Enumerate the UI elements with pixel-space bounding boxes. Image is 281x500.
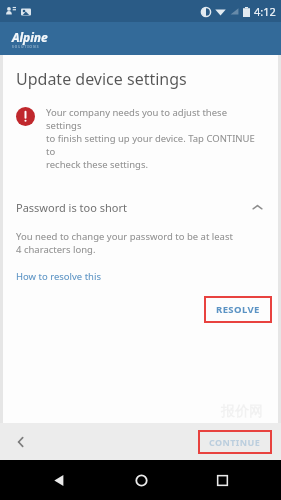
staticText: SOLUTIONS	[12, 45, 40, 49]
button[interactable]: Back	[36, 460, 82, 500]
staticText: Your company needs you to adjust these s…	[46, 106, 262, 171]
button[interactable]: Password is too short	[3, 195, 278, 219]
button[interactable]: Home	[118, 460, 164, 500]
staticText: CONTINUE	[209, 436, 261, 448]
staticText: Alpine	[12, 29, 48, 45]
button[interactable]: Back	[8, 429, 34, 455]
staticText: Password is too short	[16, 200, 247, 215]
staticText: How to resolve this	[16, 270, 101, 283]
staticText: 报价网	[221, 403, 263, 421]
button[interactable]: CONTINUE	[198, 430, 272, 454]
staticText: You need to change your password to be a…	[16, 230, 233, 256]
staticText: 4:12	[254, 4, 276, 19]
staticText: Update device settings	[16, 68, 187, 90]
button[interactable]: How to resolve this	[15, 268, 102, 285]
button[interactable]: Recent apps	[199, 460, 245, 500]
button[interactable]: RESOLVE	[204, 296, 272, 323]
staticText: RESOLVE	[216, 303, 260, 316]
other: Collapse	[247, 197, 267, 217]
